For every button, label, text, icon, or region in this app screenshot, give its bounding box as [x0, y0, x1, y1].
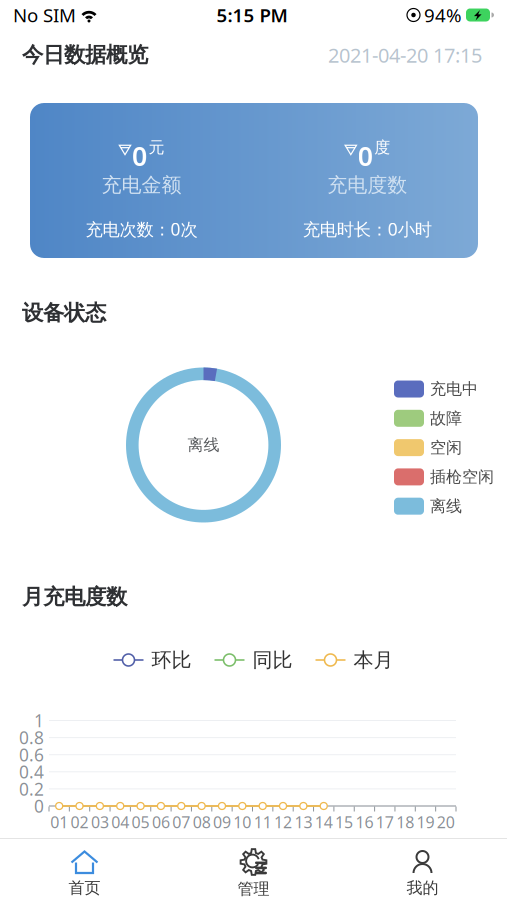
- staticText: 0.4: [19, 760, 44, 783]
- staticText: 月充电度数: [22, 584, 127, 610]
- staticText: 0: [34, 794, 44, 817]
- staticText: 09: [213, 811, 231, 833]
- staticText: 14: [315, 811, 333, 833]
- staticText: 充电度数: [327, 173, 407, 197]
- staticText: 1: [34, 709, 44, 732]
- staticText: 11: [254, 811, 272, 833]
- staticText: 管理: [237, 879, 269, 899]
- staticText: 元: [148, 137, 164, 157]
- button[interactable]: 我的: [338, 850, 507, 898]
- staticText: 充电中: [430, 379, 478, 399]
- staticText: 充电金额: [101, 173, 181, 197]
- staticText: 首页: [68, 878, 100, 898]
- staticText: 故障: [430, 408, 462, 428]
- staticText: 5:15 PM: [216, 3, 287, 27]
- staticText: 02: [70, 811, 88, 833]
- staticText: 我的: [406, 878, 438, 898]
- staticText: 充电时长：0小时: [303, 217, 432, 240]
- staticText: 0: [132, 138, 147, 173]
- staticText: 08: [193, 811, 211, 833]
- staticText: 插枪空闲: [430, 467, 494, 487]
- staticText: 环比: [151, 648, 191, 672]
- staticText: 充电次数：0次: [85, 217, 197, 240]
- staticText: 16: [355, 811, 373, 833]
- button[interactable]: 管理: [169, 849, 338, 899]
- staticText: 离线: [430, 496, 462, 516]
- staticText: 今日数据概览: [22, 42, 148, 68]
- staticText: 0.8: [19, 726, 44, 749]
- staticText: 12: [274, 811, 292, 833]
- staticText: 本月: [353, 648, 393, 672]
- staticText: 05: [132, 811, 150, 833]
- staticText: 18: [396, 811, 414, 833]
- staticText: 空闲: [430, 438, 462, 457]
- staticText: 同比: [252, 648, 292, 672]
- staticText: 17: [376, 811, 394, 833]
- button[interactable]: 首页: [0, 850, 169, 898]
- staticText: 03: [91, 811, 109, 833]
- staticText: 设备状态: [22, 300, 106, 326]
- staticText: 01: [50, 811, 68, 833]
- staticText: 0.2: [19, 777, 44, 800]
- staticText: 04: [111, 811, 129, 833]
- staticText: 0: [358, 138, 373, 173]
- staticText: 19: [416, 811, 434, 833]
- staticText: 07: [172, 811, 190, 833]
- staticText: No SIM: [13, 3, 76, 27]
- staticText: 0.6: [19, 743, 44, 766]
- staticText: 20: [437, 811, 455, 833]
- staticText: 13: [294, 811, 312, 833]
- staticText: 10: [233, 811, 251, 833]
- staticText: 15: [335, 811, 353, 833]
- staticText: 离线: [187, 435, 219, 455]
- staticText: 度: [374, 137, 390, 157]
- staticText: 94%: [424, 3, 462, 27]
- staticText: 06: [152, 811, 170, 833]
- staticText: 2021-04-20 17:15: [328, 42, 482, 68]
